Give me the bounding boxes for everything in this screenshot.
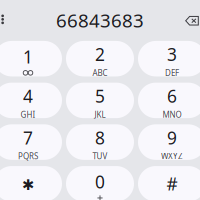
button[interactable]: 0 bbox=[66, 166, 134, 200]
button[interactable]: 8 bbox=[66, 124, 134, 160]
staticText: ✱ bbox=[22, 176, 34, 193]
button[interactable]: ✱ bbox=[0, 166, 62, 200]
staticText: WXYZ bbox=[161, 151, 183, 161]
staticText: 1 bbox=[23, 45, 33, 68]
button[interactable]: 9 bbox=[138, 124, 200, 160]
staticText: 0 bbox=[95, 170, 105, 193]
staticText: 7 bbox=[23, 126, 33, 149]
button[interactable]: 2 bbox=[66, 41, 134, 76]
staticText: 2 bbox=[95, 43, 105, 66]
staticText: TUV bbox=[92, 151, 107, 161]
button[interactable]: 5 bbox=[66, 83, 134, 118]
staticText: 4 bbox=[23, 84, 33, 107]
staticText: MNO bbox=[162, 109, 181, 120]
button[interactable]: 6 bbox=[138, 83, 200, 118]
staticText: 6 bbox=[167, 84, 177, 107]
button[interactable]: 3 bbox=[138, 41, 200, 76]
button[interactable]: Delete bbox=[184, 10, 200, 32]
button[interactable]: # bbox=[138, 166, 200, 200]
staticText: PQRS bbox=[18, 151, 38, 161]
button[interactable]: 4 bbox=[0, 83, 62, 118]
staticText: 9 bbox=[167, 126, 177, 149]
staticText: ABC bbox=[92, 67, 107, 78]
staticText: JKL bbox=[94, 109, 105, 120]
button[interactable]: 1 bbox=[0, 41, 62, 76]
staticText: DEF bbox=[165, 67, 179, 78]
staticText: GHI bbox=[20, 109, 35, 120]
staticText: 8 bbox=[95, 126, 105, 149]
staticText: # bbox=[166, 172, 177, 195]
button[interactable]: More options bbox=[0, 10, 14, 32]
button[interactable]: 7 bbox=[0, 124, 62, 160]
staticText: 5 bbox=[95, 84, 105, 107]
staticText: 3 bbox=[167, 43, 177, 66]
staticText: 66843683 bbox=[56, 8, 144, 33]
